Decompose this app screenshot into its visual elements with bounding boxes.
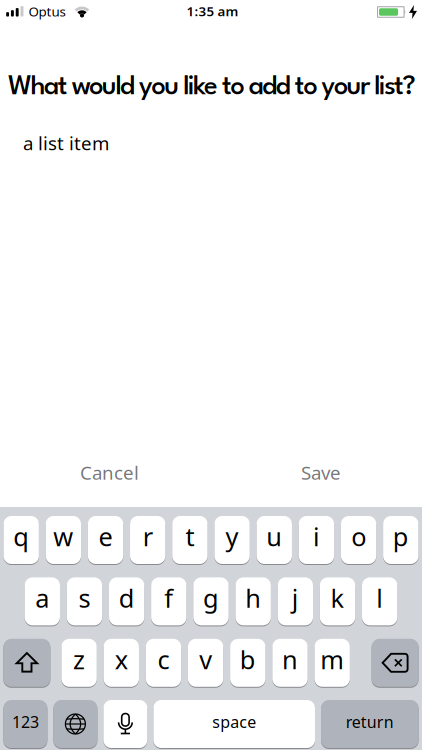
button[interactable]: z bbox=[61, 639, 97, 687]
staticText: d bbox=[119, 581, 135, 615]
staticText: b bbox=[240, 642, 256, 676]
button[interactable]: f bbox=[151, 577, 186, 625]
button[interactable]: v bbox=[188, 639, 223, 687]
staticText: v bbox=[199, 642, 212, 676]
button[interactable]: w bbox=[46, 516, 81, 564]
staticText: a list item bbox=[23, 130, 109, 155]
staticText: Optus bbox=[28, 2, 65, 20]
button[interactable]: k bbox=[320, 577, 355, 625]
button[interactable]: u bbox=[257, 516, 292, 564]
staticText: What would you like to add to your list? bbox=[8, 74, 415, 100]
staticText: g bbox=[203, 581, 219, 615]
button[interactable]: l bbox=[362, 577, 397, 625]
button[interactable]: 123 bbox=[3, 700, 47, 748]
staticText: n bbox=[282, 642, 298, 676]
staticText: o bbox=[351, 520, 366, 553]
button[interactable]: g bbox=[193, 577, 229, 625]
staticText: p bbox=[393, 520, 409, 553]
staticText: j bbox=[292, 581, 299, 615]
button[interactable]: Dictate bbox=[103, 700, 147, 748]
staticText: f bbox=[164, 581, 173, 615]
button[interactable]: j bbox=[278, 577, 313, 625]
button[interactable]: h bbox=[235, 577, 271, 625]
button[interactable]: c bbox=[146, 639, 181, 687]
button[interactable]: d bbox=[109, 577, 144, 625]
staticText: t bbox=[185, 520, 194, 553]
staticText: s bbox=[78, 581, 90, 615]
button[interactable]: b bbox=[230, 639, 265, 687]
button[interactable]: Save bbox=[301, 460, 341, 485]
button[interactable]: Next keyboard bbox=[53, 700, 97, 748]
staticText: l bbox=[376, 581, 383, 615]
button[interactable]: space bbox=[153, 700, 315, 748]
staticText: q bbox=[13, 520, 29, 553]
staticText: m bbox=[320, 642, 344, 676]
staticText: Cancel bbox=[80, 460, 139, 485]
button[interactable]: q bbox=[3, 516, 39, 564]
button[interactable]: x bbox=[104, 639, 139, 687]
staticText: space bbox=[212, 711, 256, 732]
staticText: c bbox=[157, 642, 169, 676]
staticText: u bbox=[266, 520, 282, 553]
button[interactable]: p bbox=[383, 516, 418, 564]
button[interactable]: Shift bbox=[3, 639, 50, 687]
button[interactable]: s bbox=[67, 577, 102, 625]
staticText: k bbox=[330, 581, 344, 615]
staticText: w bbox=[53, 520, 73, 553]
staticText: x bbox=[115, 642, 128, 676]
button[interactable]: Delete bbox=[372, 639, 419, 687]
button[interactable]: m bbox=[314, 639, 350, 687]
staticText: y bbox=[226, 520, 239, 553]
staticText: 123 bbox=[12, 711, 39, 732]
staticText: i bbox=[313, 520, 320, 553]
button[interactable]: n bbox=[272, 639, 308, 687]
staticText: r bbox=[143, 520, 153, 553]
staticText: return bbox=[346, 711, 394, 732]
button[interactable]: i bbox=[299, 516, 334, 564]
button[interactable]: a bbox=[25, 577, 60, 625]
staticText: e bbox=[99, 520, 113, 553]
staticText: z bbox=[73, 642, 85, 676]
button[interactable]: e bbox=[88, 516, 123, 564]
staticText: a bbox=[35, 581, 49, 615]
button[interactable]: o bbox=[341, 516, 376, 564]
staticText: h bbox=[245, 581, 261, 615]
staticText: 1:35 am bbox=[186, 2, 238, 20]
button[interactable]: t bbox=[172, 516, 208, 564]
button[interactable]: return bbox=[321, 700, 419, 748]
staticText: Save bbox=[301, 460, 341, 485]
button[interactable]: r bbox=[130, 516, 165, 564]
button[interactable]: y bbox=[214, 516, 250, 564]
button[interactable]: Cancel bbox=[80, 460, 139, 485]
